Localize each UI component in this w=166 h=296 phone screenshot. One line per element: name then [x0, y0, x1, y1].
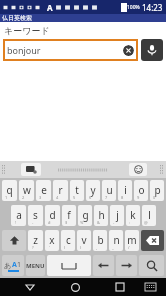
- button[interactable]: t: [70, 180, 84, 201]
- staticText: /: [128, 245, 130, 250]
- staticText: i: [124, 183, 127, 197]
- staticText: 仏日英検索: [2, 14, 32, 22]
- staticText: (: [64, 245, 66, 250]
- button[interactable]: s: [28, 205, 43, 226]
- button[interactable]: Space: [47, 255, 91, 276]
- staticText: m: [127, 233, 137, 247]
- staticText: p: [154, 183, 161, 197]
- button[interactable]: b: [93, 230, 107, 251]
- staticText: n: [113, 233, 120, 247]
- button[interactable]: Language: [2, 255, 24, 276]
- button[interactable]: k: [126, 205, 140, 226]
- staticText: r: [58, 183, 63, 197]
- button[interactable]: l: [142, 205, 156, 226]
- staticText: あ: [4, 261, 12, 270]
- staticText: ': [49, 245, 50, 250]
- staticText: 7: [105, 195, 108, 200]
- button[interactable]: a: [11, 205, 26, 226]
- staticText: v: [81, 233, 87, 247]
- staticText: q: [6, 183, 13, 197]
- staticText: t: [75, 183, 79, 197]
- button[interactable]: Clear: [123, 45, 134, 56]
- staticText: キーワード: [4, 25, 50, 36]
- button[interactable]: c: [61, 230, 75, 251]
- button[interactable]: d: [45, 205, 60, 226]
- staticText: u: [106, 183, 113, 197]
- button[interactable]: q: [2, 180, 17, 201]
- staticText: o: [138, 183, 145, 197]
- button[interactable]: Backspace: [141, 230, 164, 251]
- staticText: k: [130, 208, 136, 222]
- button[interactable]: f: [62, 205, 76, 226]
- staticText: ): [80, 245, 82, 250]
- staticText: 1: [17, 260, 22, 270]
- button[interactable]: Menu: [26, 255, 45, 276]
- button[interactable]: Cursor left: [93, 255, 114, 276]
- staticText: 9: [137, 195, 140, 200]
- staticText: 8: [121, 195, 124, 200]
- staticText: bonjour: [7, 44, 123, 56]
- staticText: g: [82, 208, 89, 222]
- staticText: @: [144, 220, 148, 225]
- button[interactable]: Voice search: [141, 39, 163, 61]
- button[interactable]: m: [125, 230, 139, 251]
- button[interactable]: h: [94, 205, 108, 226]
- button[interactable]: w: [19, 180, 34, 201]
- staticText: A: [47, 2, 53, 13]
- button[interactable]: bonjour: [3, 39, 138, 61]
- staticText: &: [97, 220, 100, 225]
- button[interactable]: z: [28, 230, 43, 251]
- button[interactable]: x: [45, 230, 59, 251]
- button[interactable]: j: [110, 205, 124, 226]
- button[interactable]: Emoji: [129, 163, 147, 176]
- staticText: ,: [96, 245, 98, 250]
- staticText: e: [41, 183, 47, 197]
- button[interactable]: o: [134, 180, 148, 201]
- staticText: x: [49, 233, 55, 247]
- staticText: !: [15, 220, 17, 225]
- staticText: c: [66, 233, 71, 247]
- button[interactable]: n: [109, 230, 123, 251]
- staticText: :: [129, 220, 131, 225]
- staticText: d: [49, 208, 56, 222]
- staticText: 100%: [127, 4, 140, 11]
- staticText: #: [48, 220, 51, 225]
- staticText: b: [97, 233, 104, 247]
- staticText: 6: [89, 195, 92, 200]
- staticText: s: [33, 208, 38, 222]
- button[interactable]: r: [53, 180, 68, 201]
- staticText: 2: [22, 195, 25, 200]
- button[interactable]: p: [150, 180, 164, 201]
- staticText: 3: [39, 195, 42, 200]
- staticText: -: [32, 220, 34, 225]
- staticText: %: [80, 220, 84, 225]
- staticText: ?: [32, 245, 34, 250]
- staticText: -: [113, 220, 115, 225]
- button[interactable]: e: [36, 180, 51, 201]
- staticText: y: [90, 183, 96, 197]
- button[interactable]: Back: [20, 278, 40, 296]
- staticText: _: [112, 245, 114, 250]
- button[interactable]: Input mode: [21, 163, 41, 176]
- button[interactable]: Keyboard: [140, 278, 160, 296]
- staticText: f: [67, 208, 71, 222]
- staticText: j: [116, 208, 119, 222]
- button[interactable]: Recents: [110, 278, 130, 296]
- button[interactable]: v: [77, 230, 91, 251]
- button[interactable]: u: [102, 180, 116, 201]
- staticText: MENU: [26, 262, 45, 270]
- button[interactable]: Cursor right: [116, 255, 137, 276]
- staticText: a: [16, 208, 22, 222]
- button[interactable]: y: [86, 180, 100, 201]
- staticText: 1: [5, 195, 8, 200]
- button[interactable]: Shift: [2, 230, 26, 251]
- staticText: z: [33, 233, 38, 247]
- staticText: h: [98, 208, 105, 222]
- button[interactable]: g: [78, 205, 92, 226]
- button[interactable]: Search: [139, 255, 164, 276]
- button[interactable]: Home: [65, 278, 85, 296]
- button[interactable]: i: [118, 180, 132, 201]
- staticText: $: [65, 220, 68, 225]
- staticText: A: [12, 260, 17, 270]
- staticText: 0: [153, 195, 156, 200]
